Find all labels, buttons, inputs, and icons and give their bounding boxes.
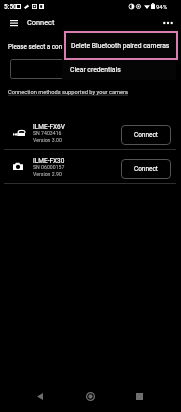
staticText: SN 06000157	[33, 164, 65, 170]
staticText: Version 3.00	[33, 137, 62, 143]
staticText: Delete Bluetooth paired cameras	[71, 42, 170, 50]
button[interactable]: Recent apps	[122, 379, 156, 412]
button[interactable]: ILME-FX30	[0, 150, 181, 183]
button[interactable]: More options	[155, 13, 181, 32]
staticText: SN 7403416	[33, 130, 62, 136]
staticText: Clear credentials	[70, 66, 121, 74]
staticText: 94%	[156, 3, 168, 10]
button[interactable]: Connection methods supported by your cam…	[8, 89, 128, 96]
staticText: Connect	[134, 131, 158, 139]
button[interactable]: Home	[73, 379, 107, 412]
staticText: Connect	[27, 18, 55, 27]
staticText: ILME-FX6V	[33, 123, 65, 131]
button[interactable]: ILME-FX6V	[0, 116, 181, 149]
staticText: ILME-FX30	[33, 157, 65, 165]
staticText: Version 2.90	[33, 171, 62, 177]
staticText: 5:50	[4, 3, 17, 11]
button[interactable]: Connect	[121, 125, 171, 145]
button[interactable]: Connect	[121, 159, 171, 179]
button[interactable]: Open navigation drawer	[1, 13, 27, 32]
button[interactable]: Delete Bluetooth paired cameras	[64, 31, 178, 60]
button[interactable]: Clear credentials	[62, 60, 176, 80]
button[interactable]	[10, 59, 173, 79]
button[interactable]: Back	[23, 379, 57, 412]
staticText: Connect	[134, 165, 158, 173]
staticText: Please select a connection method	[8, 43, 107, 50]
